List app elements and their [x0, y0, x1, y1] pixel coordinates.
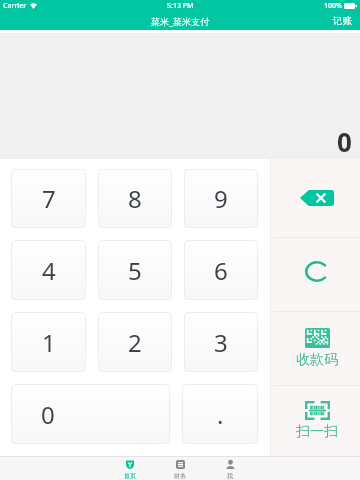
staticText: 扫一扫	[296, 423, 338, 441]
staticText: 6	[214, 254, 228, 287]
button[interactable]: 财务	[155, 457, 205, 480]
staticText: Carrier	[3, 1, 27, 11]
button[interactable]: 1	[11, 312, 86, 372]
staticText: 菜米_菜米支付	[151, 15, 209, 27]
staticText: 9	[214, 182, 228, 215]
staticText: 我	[227, 472, 233, 480]
staticText: 收款码	[296, 351, 338, 369]
staticText: 5	[128, 254, 142, 287]
button[interactable]: 首页	[105, 457, 155, 480]
staticText: 记账	[333, 15, 352, 27]
button[interactable]: 9	[184, 169, 258, 228]
button[interactable]: 收款码	[273, 312, 360, 385]
staticText: 7	[42, 182, 56, 215]
staticText: 财务	[174, 472, 186, 480]
button[interactable]: Backspace	[273, 159, 360, 237]
staticText: 0	[41, 398, 55, 431]
button[interactable]: 5	[98, 240, 172, 300]
button[interactable]: 4	[11, 240, 86, 300]
staticText: 2	[128, 326, 142, 359]
button[interactable]: 3	[184, 312, 258, 372]
staticText: 8	[128, 182, 142, 215]
button[interactable]: 8	[98, 169, 172, 228]
staticText: 首页	[124, 472, 136, 480]
staticText: .	[217, 398, 224, 431]
staticText: 3	[214, 326, 228, 359]
staticText: 5:13 PM	[167, 1, 194, 11]
button[interactable]: 7	[11, 169, 86, 228]
staticText: 1	[42, 326, 56, 359]
staticText: 100%	[324, 1, 342, 11]
button[interactable]: 6	[184, 240, 258, 300]
staticText: 0	[337, 124, 352, 159]
button[interactable]: .	[182, 384, 258, 444]
staticText: 4	[42, 254, 56, 287]
button[interactable]: Clear	[273, 238, 360, 311]
button[interactable]: 记账	[325, 11, 360, 30]
button[interactable]: 我	[205, 457, 255, 480]
button[interactable]: 2	[98, 312, 172, 372]
button[interactable]: 扫一扫	[273, 386, 360, 456]
button[interactable]: 0	[11, 384, 170, 444]
